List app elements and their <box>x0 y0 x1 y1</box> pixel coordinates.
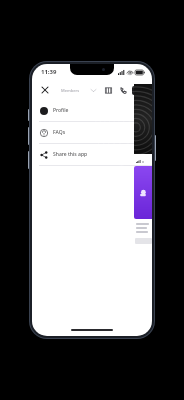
button[interactable]: Call <box>117 84 129 96</box>
staticText: Profile <box>53 107 69 114</box>
button[interactable]: Account <box>132 86 145 95</box>
button[interactable]: Expand <box>88 85 98 95</box>
button[interactable]: Members <box>61 88 80 93</box>
button[interactable]: Share this app <box>32 144 152 165</box>
button[interactable]: Guide <box>102 84 114 96</box>
staticText: FAQs <box>53 129 66 136</box>
button[interactable]: Close <box>39 84 51 96</box>
staticText: 11:39 <box>41 68 57 76</box>
staticText: Members <box>61 88 80 93</box>
staticText: Share this app <box>53 151 88 158</box>
button[interactable]: Profile <box>32 100 152 121</box>
button[interactable]: Promotion <box>134 166 152 219</box>
button[interactable]: FAQs <box>32 122 152 143</box>
